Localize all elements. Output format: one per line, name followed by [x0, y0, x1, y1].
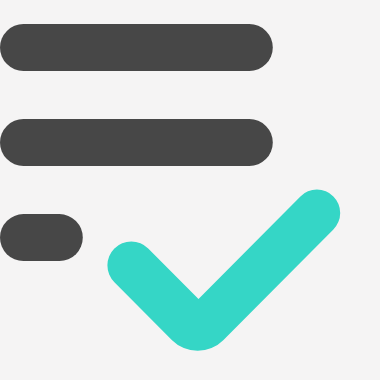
button[interactable]: Checklist complete: [0, 0, 380, 380]
